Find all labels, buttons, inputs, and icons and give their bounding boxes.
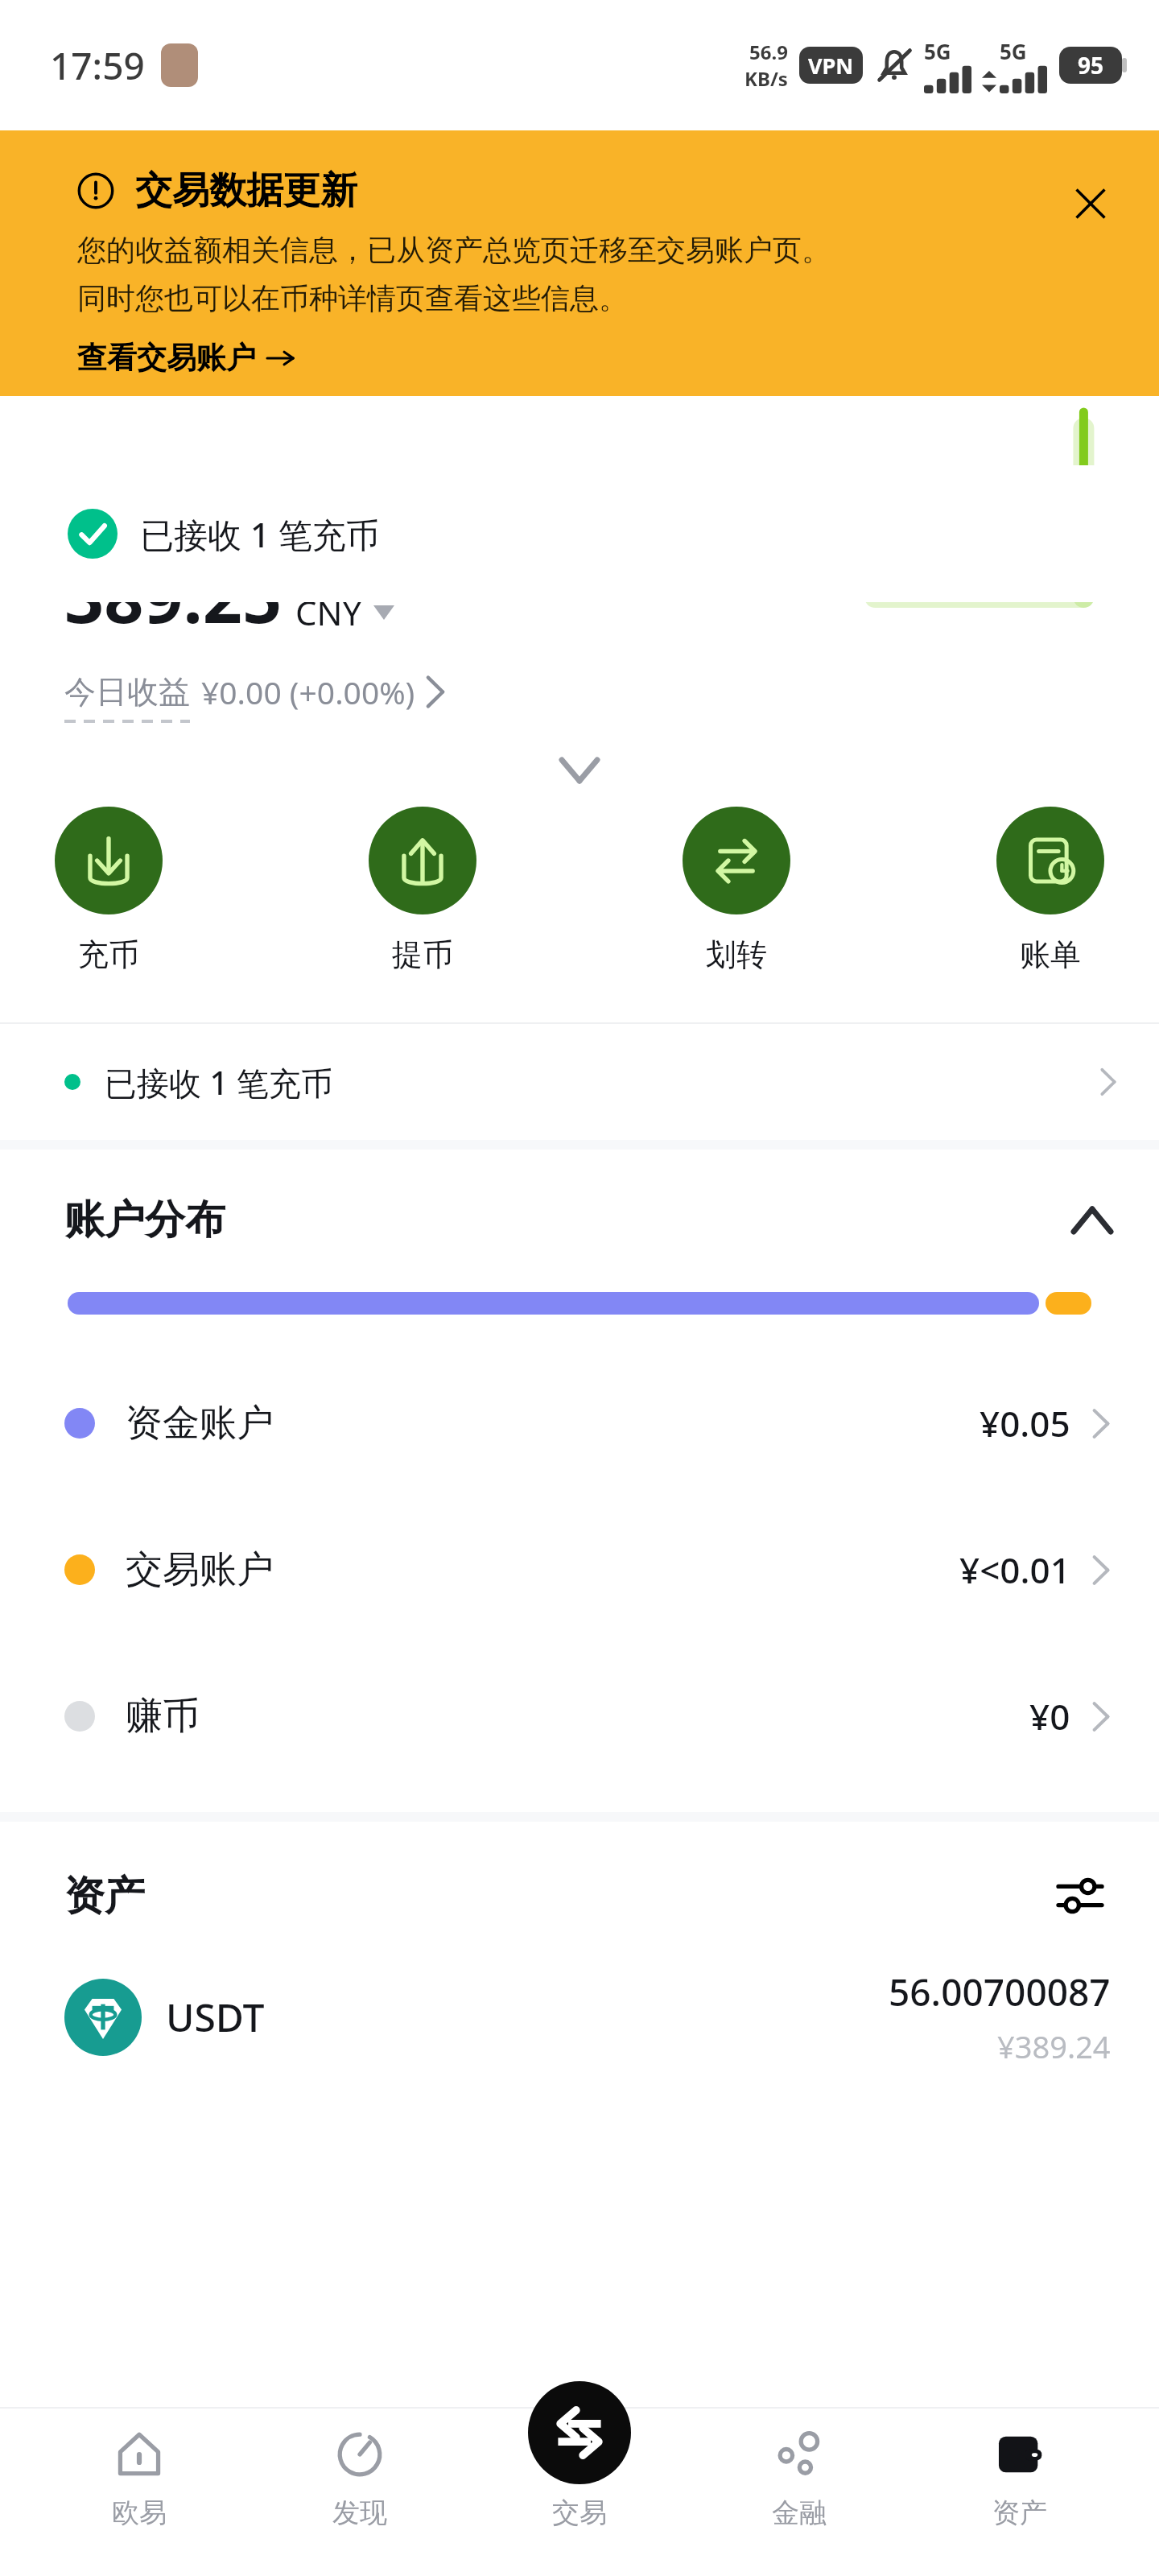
staticText: 赚币 [126,1693,200,1740]
staticText: ¥389.24 [997,2025,1111,2067]
button[interactable]: 交易账户 [0,1496,1159,1643]
button[interactable]: 已接收 1 笔充币 [0,1024,1159,1140]
button[interactable]: 赚币 [0,1643,1159,1790]
other: Silent mode [872,43,916,87]
button[interactable]: 发现 [279,2426,440,2530]
button[interactable]: 已接收 1 笔充币 [18,465,1141,602]
staticText: 已接收 1 笔充币 [140,511,380,557]
staticText: 账单 [1020,935,1081,974]
staticText: 5G [924,37,951,65]
staticText: USDT [166,1991,265,2043]
staticText: 56.9 [749,39,788,65]
button[interactable]: 账单 [990,807,1111,974]
staticText: 发现 [332,2495,387,2530]
staticText: 交易账户 [126,1546,274,1593]
staticText: 您的收益额相关信息，已从资产总览页迁移至交易账户页。 同时您也可以在币种详情页查… [77,232,831,316]
button[interactable]: 提币 [362,807,483,974]
staticText: 95 [1078,50,1104,80]
button[interactable]: 交易 [499,2426,660,2530]
staticText: ¥0 [1029,1692,1070,1740]
staticText: 资产 [992,2495,1047,2530]
staticText: 资产 [64,1871,145,1922]
staticText: ¥0.05 [980,1399,1070,1447]
staticText: ¥0.00 (+0.00%) [201,671,415,713]
button[interactable]: 资产 [939,2426,1100,2530]
staticText: 交易数据更新 [135,167,357,214]
staticText: 充币 [78,935,139,974]
button[interactable]: Filter assets [1050,1865,1111,1926]
staticText: 划转 [706,935,767,974]
staticText: 查看交易账户 [77,339,256,377]
staticText: VPN [808,51,854,80]
staticText: 已接收 1 笔充币 [105,1060,333,1104]
button[interactable]: 欧易 [59,2426,220,2530]
staticText: KB/s [744,65,788,92]
staticText: 提币 [392,935,453,974]
staticText: CNY [295,589,362,635]
button[interactable]: 今日收益 [64,671,446,713]
button[interactable]: 充币 [48,807,169,974]
staticText: 5G [1000,37,1027,65]
button[interactable]: 金融 [719,2426,880,2530]
staticText: 今日收益 [64,672,190,712]
button[interactable]: USDT [0,1967,1159,2067]
button[interactable]: 资金账户 [0,1350,1159,1496]
staticText: ¥<0.01 [959,1546,1070,1594]
button[interactable]: Trade [528,2381,631,2484]
staticText: 账户分布 [64,1195,225,1245]
staticText: 金融 [772,2495,827,2530]
staticText: 欧易 [112,2495,167,2530]
button[interactable]: Expand [543,734,616,807]
staticText: 资金账户 [126,1400,274,1447]
button[interactable]: Close banner [1054,167,1127,240]
staticText: 56.00700087 [889,1967,1111,2017]
staticText: 交易 [552,2495,607,2530]
button[interactable]: 389.25 [64,549,394,643]
button[interactable]: 查看交易账户 [77,339,295,377]
button[interactable]: 账户分布 [0,1195,1159,1245]
staticText: 17:59 [50,40,145,91]
staticText: 389.25 [64,549,283,643]
button[interactable]: 划转 [676,807,797,974]
